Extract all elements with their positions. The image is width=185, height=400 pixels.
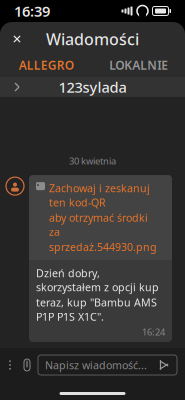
staticText: Wiadomości (46, 28, 139, 50)
button[interactable]: LOKALNIE (92, 53, 185, 79)
staticText: 16:24 (142, 326, 165, 338)
button[interactable]: ALLEGRO (0, 53, 92, 79)
staticText: 123sylada (58, 77, 126, 97)
staticText: ALLEGRO (19, 57, 74, 73)
staticText: Napisz wiadomość... (45, 358, 147, 372)
staticText: teraz, kup "Bambu AMS P1P P1S X1C". (36, 295, 157, 324)
button[interactable]: Wstecz (4, 77, 30, 97)
staticText: aby otrzymać środki za (49, 210, 148, 239)
button[interactable]: Napisz wiadomość... (38, 355, 177, 375)
staticText: Zachowaj i zeskanuj ten kod-QR (49, 181, 150, 209)
button[interactable]: Więcej opcji (2, 352, 18, 378)
button[interactable]: Załącz plik (18, 352, 36, 378)
button[interactable]: Zamknij (4, 26, 30, 52)
staticText: 16:39 (14, 1, 50, 21)
staticText: LOKALNIE (109, 57, 168, 73)
staticText: Dzień dobry, skorzystałem z opcji kup (36, 266, 159, 294)
staticText: sprzedaż.544930.png (49, 240, 157, 254)
staticText: 30 kwietnia (69, 155, 116, 167)
